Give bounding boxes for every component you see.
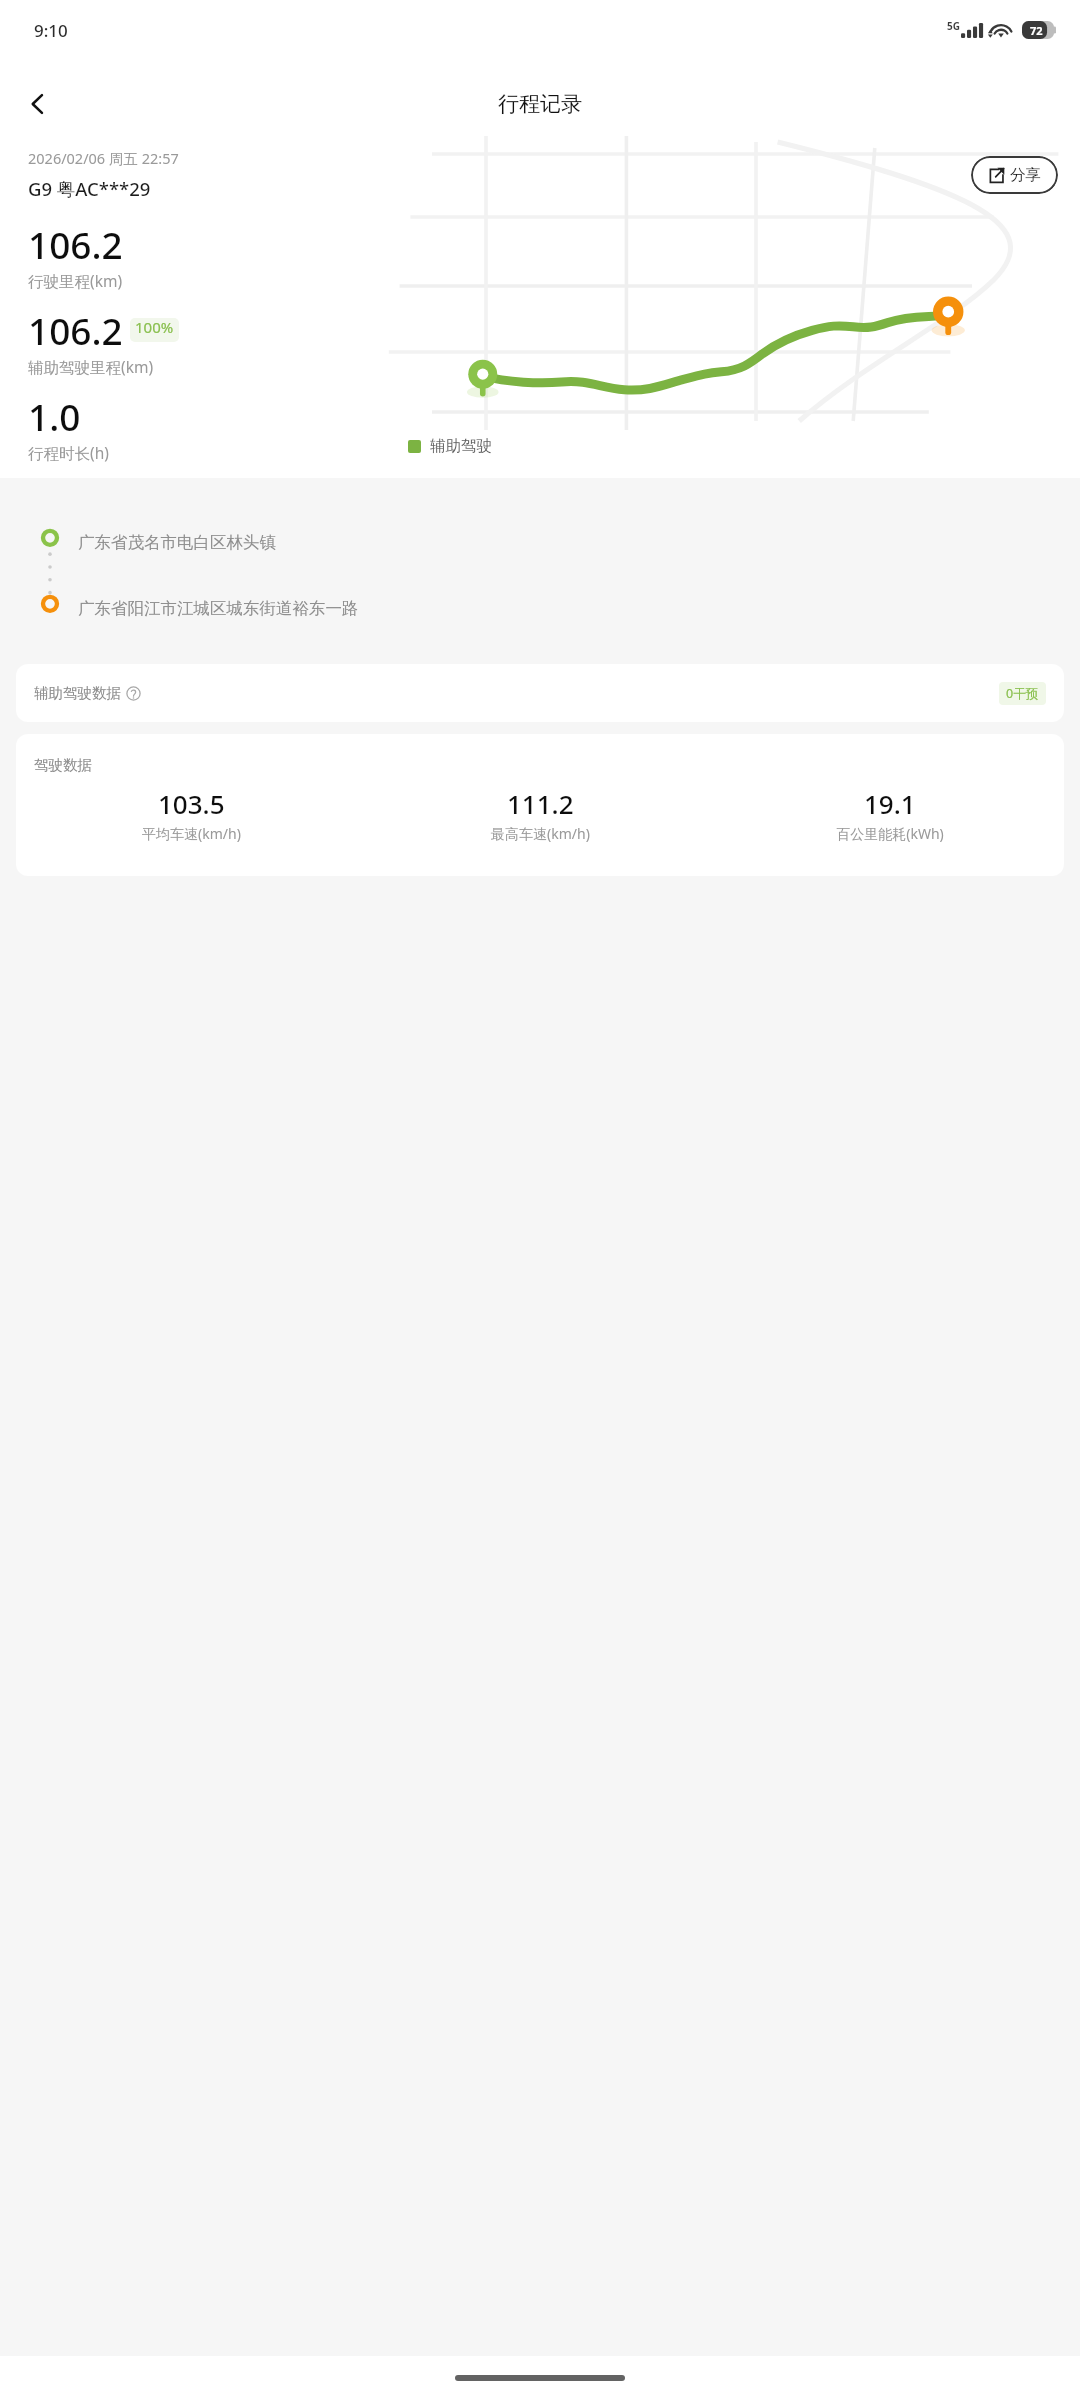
staticText: 19.1 — [864, 786, 916, 821]
button[interactable]: 返回 — [14, 80, 62, 128]
button[interactable]: 广东省阳江市江城区城东街道裕东一路 — [78, 590, 1080, 626]
staticText: 103.5 — [158, 786, 225, 821]
staticText: 广东省阳江市江城区城东街道裕东一路 — [78, 598, 359, 619]
staticText: 广东省茂名市电白区林头镇 — [78, 532, 276, 553]
staticText: 106.2 — [28, 219, 123, 269]
staticText: G9 粤AC***29 — [28, 176, 151, 201]
staticText: 平均车速(km/h) — [142, 824, 241, 843]
button[interactable]: 分享 — [971, 156, 1058, 194]
staticText: 106.2 — [28, 305, 123, 355]
staticText: 72 — [1030, 23, 1043, 38]
staticText: 2026/02/06 周五 22:57 — [28, 148, 179, 168]
staticText: 5G — [947, 19, 960, 33]
staticText: 行程时长(h) — [28, 442, 109, 463]
staticText: 辅助驾驶数据 — [34, 684, 121, 702]
staticText: 0干预 — [1006, 685, 1039, 702]
staticText: 百公里能耗(kWh) — [836, 824, 944, 843]
staticText: 行程记录 — [498, 91, 582, 117]
staticText: 1.0 — [28, 391, 81, 441]
staticText: 分享 — [1010, 165, 1041, 185]
staticText: 9:10 — [34, 19, 68, 42]
staticText: 111.2 — [507, 786, 574, 821]
button[interactable]: 驾驶数据 — [16, 734, 1064, 876]
staticText: 最高车速(km/h) — [491, 824, 590, 843]
button[interactable]: 广东省茂名市电白区林头镇 — [78, 524, 1080, 560]
staticText: 辅助驾驶里程(km) — [28, 356, 154, 377]
staticText: 100% — [135, 318, 174, 337]
staticText: 行驶里程(km) — [28, 270, 123, 291]
button[interactable]: 辅助驾驶数据 — [16, 664, 1064, 722]
staticText: 辅助驾驶 — [430, 436, 492, 456]
staticText: 驾驶数据 — [34, 756, 92, 774]
